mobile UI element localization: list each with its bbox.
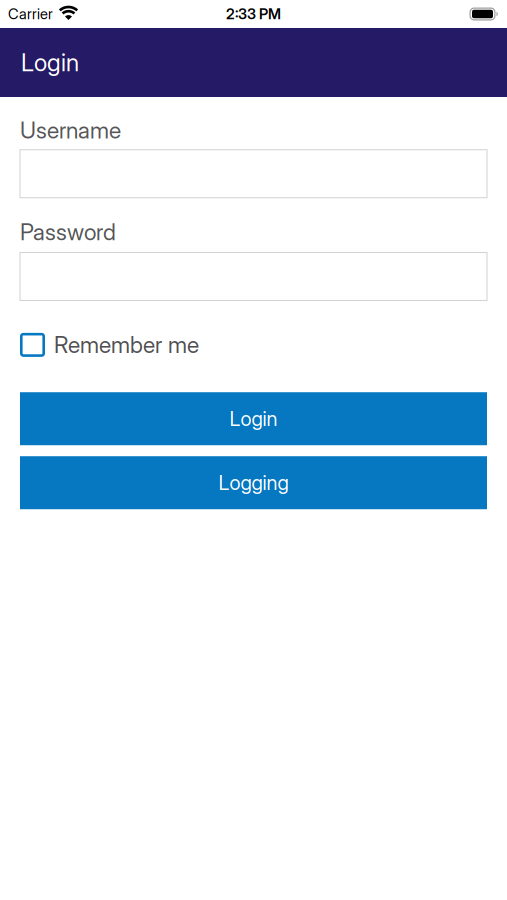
staticText: 2:33 PM [226, 5, 281, 23]
staticText: Login [21, 48, 79, 77]
staticText: Username [20, 117, 121, 144]
staticText: Remember me [54, 331, 199, 358]
button[interactable]: Logging [20, 456, 487, 509]
staticText: Login [229, 407, 277, 430]
button[interactable]: Login [20, 392, 487, 445]
staticText: Carrier [8, 5, 53, 23]
staticText: Logging [218, 471, 288, 494]
button[interactable]: Remember me [20, 331, 199, 358]
staticText: Password [20, 219, 116, 245]
